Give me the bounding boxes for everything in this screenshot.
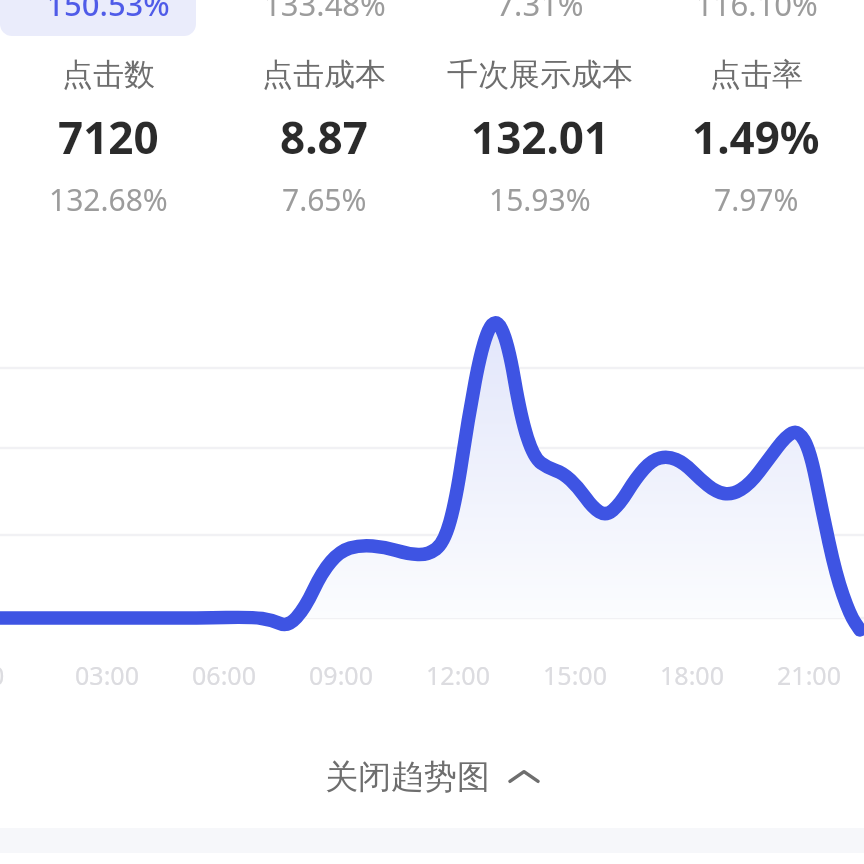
staticText: 点击数 (62, 55, 155, 94)
staticText: 00 (0, 658, 35, 692)
staticText: 千次展示成本 (447, 55, 633, 94)
staticText: 7.65% (282, 179, 367, 220)
staticText: 1.49% (692, 107, 820, 167)
staticText: 132.68% (49, 179, 168, 220)
staticText: 15:00 (530, 658, 620, 692)
staticText: 8.87 (280, 107, 368, 167)
staticText: 09:00 (296, 658, 386, 692)
staticText: 12:00 (413, 658, 503, 692)
staticText: 关闭趋势图 (325, 756, 490, 798)
staticText: 150.53% (46, 0, 170, 25)
staticText: 7120 (58, 107, 159, 167)
staticText: 7.97% (714, 179, 799, 220)
staticText: 18:00 (647, 658, 737, 692)
staticText: 133.48% (263, 0, 386, 25)
staticText: 点击成本 (262, 55, 386, 94)
staticText: 06:00 (179, 658, 269, 692)
staticText: 7.31% (496, 0, 584, 25)
other: Collapse trend chart (508, 766, 540, 788)
staticText: 21:00 (764, 658, 854, 692)
staticText: 116.10% (695, 0, 818, 25)
staticText: 15.93% (489, 179, 591, 220)
button[interactable]: 点击数 (0, 55, 216, 220)
button[interactable]: 点击成本 (216, 55, 432, 220)
staticText: 132.01 (471, 107, 610, 167)
button[interactable]: 点击率 (648, 55, 864, 220)
button[interactable]: 千次展示成本 (432, 55, 648, 220)
button[interactable]: 关闭趋势图 (0, 735, 864, 819)
staticText: 03:00 (62, 658, 152, 692)
staticText: 点击率 (710, 55, 803, 94)
